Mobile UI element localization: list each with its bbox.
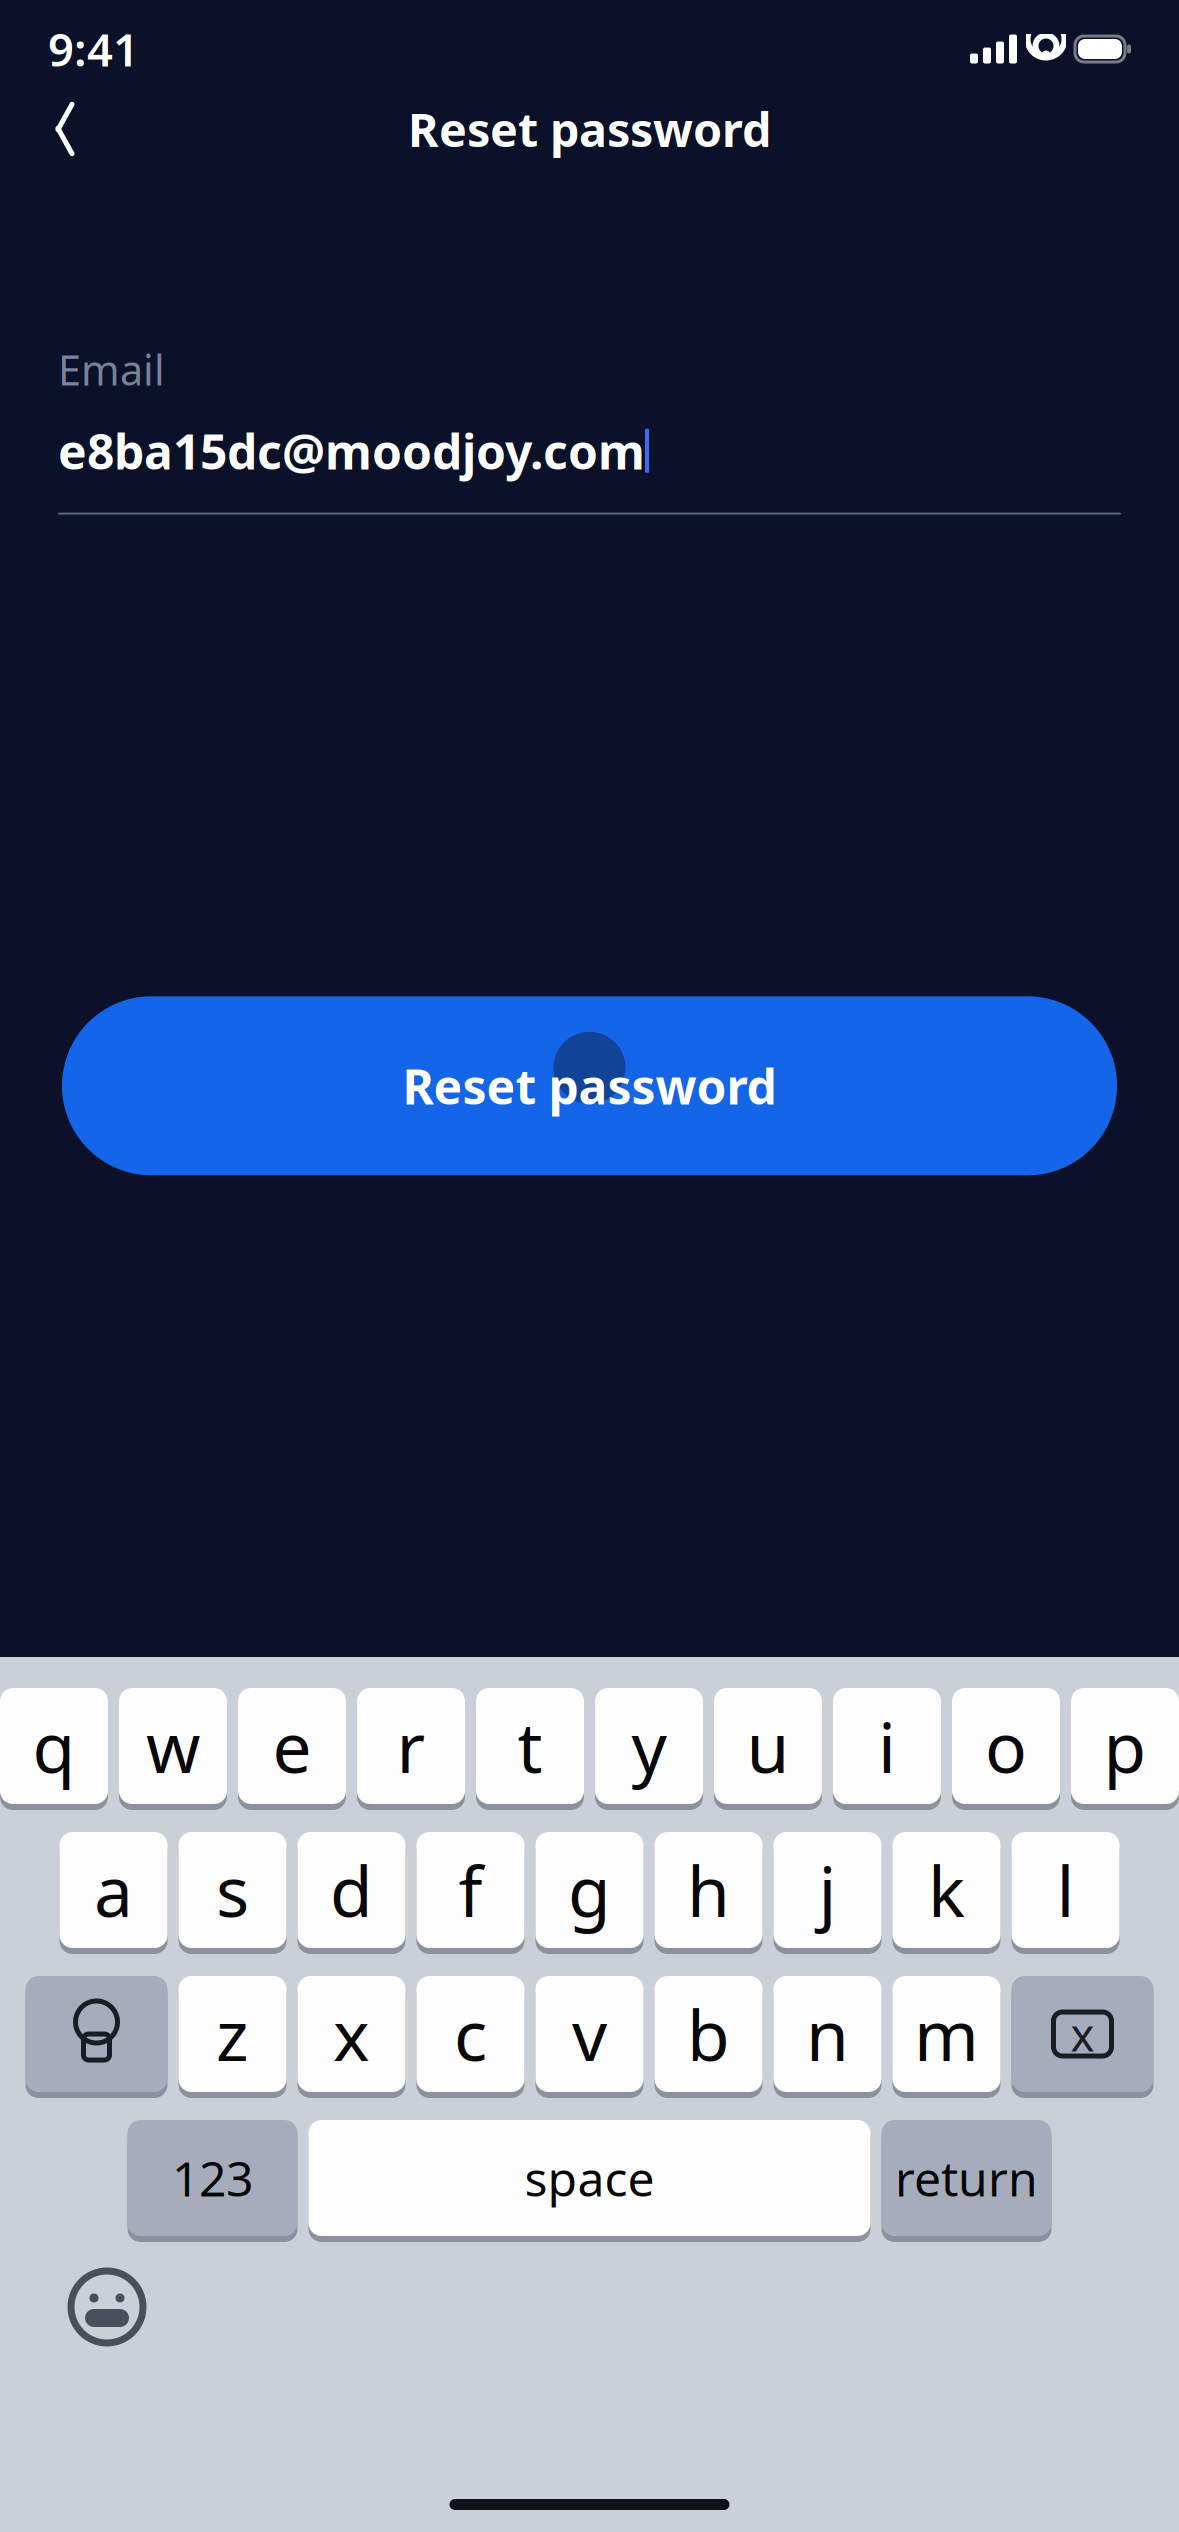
button[interactable]: c	[416, 1976, 524, 2098]
button[interactable]: a	[59, 1832, 167, 1954]
button[interactable]: h	[654, 1832, 762, 1954]
staticText: b	[687, 1988, 730, 2080]
staticText: a	[94, 1844, 133, 1936]
staticText: q	[32, 1700, 75, 1792]
staticText: p	[1103, 1700, 1146, 1792]
staticText: i	[878, 1700, 896, 1792]
staticText: k	[928, 1844, 965, 1936]
button[interactable]: Delete	[1011, 1976, 1153, 2098]
staticText: h	[687, 1844, 730, 1936]
button[interactable]: q	[0, 1688, 108, 1810]
button[interactable]: Shift	[25, 1976, 167, 2098]
button[interactable]: 123	[127, 2120, 297, 2242]
staticText: c	[454, 1988, 487, 2080]
staticText: Reset password	[408, 98, 771, 160]
button[interactable]: y	[595, 1688, 703, 1810]
button[interactable]: u	[714, 1688, 822, 1810]
button[interactable]: e	[238, 1688, 346, 1810]
staticText: x	[1070, 2004, 1094, 2064]
button[interactable]: l	[1011, 1832, 1119, 1954]
staticText: n	[806, 1988, 849, 2080]
staticText: z	[216, 1988, 249, 2080]
staticText: Email	[58, 342, 165, 397]
staticText: s	[216, 1844, 249, 1936]
button[interactable]: v	[535, 1976, 643, 2098]
staticText: return	[895, 2146, 1038, 2210]
button[interactable]: s	[178, 1832, 286, 1954]
button[interactable]: n	[773, 1976, 881, 2098]
button[interactable]: m	[892, 1976, 1000, 2098]
button[interactable]: x	[297, 1976, 405, 2098]
staticText: e	[272, 1700, 311, 1792]
button[interactable]: Back	[22, 86, 108, 172]
button[interactable]: k	[892, 1832, 1000, 1954]
button[interactable]: t	[476, 1688, 584, 1810]
staticText: j	[818, 1844, 836, 1936]
button[interactable]: r	[357, 1688, 465, 1810]
button[interactable]: p	[1071, 1688, 1179, 1810]
staticText: m	[914, 1988, 979, 2080]
staticText: Reset password	[402, 1054, 776, 1118]
staticText: u	[746, 1700, 789, 1792]
staticText: g	[568, 1844, 611, 1936]
staticText: y	[631, 1700, 666, 1792]
button[interactable]: space	[308, 2120, 870, 2242]
staticText: o	[985, 1700, 1027, 1792]
staticText: l	[1056, 1844, 1074, 1936]
button[interactable]: j	[773, 1832, 881, 1954]
staticText: 9:41	[48, 19, 139, 79]
button[interactable]: z	[178, 1976, 286, 2098]
button[interactable]: Emoji	[52, 2252, 162, 2362]
staticText: f	[458, 1844, 482, 1936]
staticText: v	[572, 1988, 607, 2080]
button[interactable]: f	[416, 1832, 524, 1954]
staticText: t	[517, 1700, 542, 1792]
staticText: x	[333, 1988, 370, 2080]
staticText: d	[330, 1844, 373, 1936]
staticText: w	[146, 1700, 200, 1792]
staticText: e8ba15dc@moodjoy.com	[58, 419, 645, 483]
button[interactable]: g	[535, 1832, 643, 1954]
button[interactable]: b	[654, 1976, 762, 2098]
button[interactable]: w	[119, 1688, 227, 1810]
staticText: space	[524, 2146, 654, 2210]
button[interactable]: i	[833, 1688, 941, 1810]
staticText: 123	[172, 2146, 253, 2210]
button[interactable]: d	[297, 1832, 405, 1954]
button[interactable]: return	[881, 2120, 1051, 2242]
staticText: r	[396, 1700, 425, 1792]
button[interactable]: o	[952, 1688, 1060, 1810]
button[interactable]: Reset password	[62, 996, 1117, 1175]
